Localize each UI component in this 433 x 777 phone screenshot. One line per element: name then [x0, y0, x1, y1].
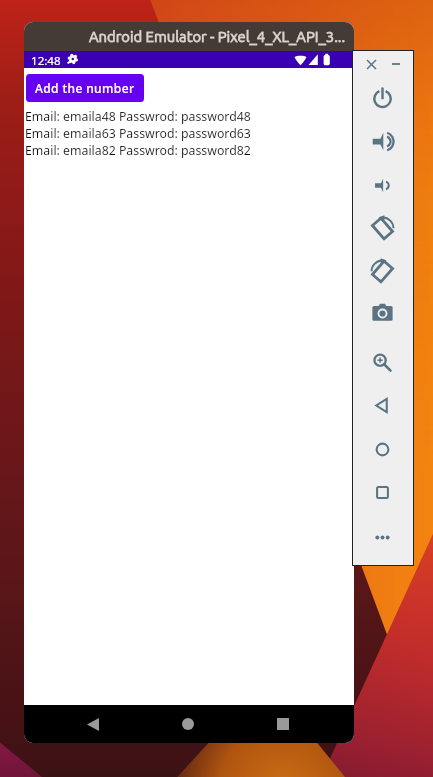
button[interactable]: Add the number [26, 74, 144, 102]
button[interactable]: Rotate left [366, 212, 398, 244]
button[interactable]: Minimize [387, 55, 405, 73]
staticText: Email: emaila48 Passwrod: password48 [25, 108, 251, 125]
button[interactable]: Overview [366, 476, 398, 508]
button[interactable]: Home [172, 705, 204, 743]
staticText: Email: emaila63 Passwrod: password63 [25, 125, 251, 142]
button[interactable]: Zoom [366, 346, 398, 378]
button[interactable]: Back [77, 705, 109, 743]
button[interactable]: Close [362, 55, 380, 73]
button[interactable]: Power [366, 82, 398, 114]
button[interactable]: Take screenshot [366, 297, 398, 329]
button[interactable]: Volume up [366, 125, 398, 157]
button[interactable]: Home [366, 433, 398, 465]
staticText: Add the number [35, 80, 135, 96]
button[interactable]: Rotate right [366, 255, 398, 287]
staticText: 12:48 [31, 53, 61, 69]
staticText: Email: emaila82 Passwrod: password82 [25, 142, 251, 159]
staticText: Android Emulator - Pixel_4_XL_API_3... [89, 28, 346, 45]
button[interactable]: Back [366, 389, 398, 421]
button[interactable]: More [366, 521, 398, 553]
button[interactable]: Recent apps [267, 705, 299, 743]
button[interactable]: Volume down [366, 169, 398, 201]
